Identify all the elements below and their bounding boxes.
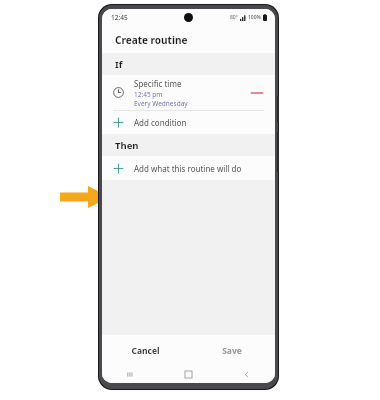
staticText: Add what this routine will do — [134, 163, 242, 174]
staticText: 12:45 — [111, 13, 128, 22]
button[interactable]: Recents — [102, 366, 159, 383]
button[interactable]: Home — [159, 366, 217, 383]
other: Highlight arrow — [60, 186, 110, 208]
staticText: 12:45 pm — [134, 90, 163, 99]
button[interactable]: Cancel — [102, 335, 188, 366]
button[interactable]: Add condition — [102, 111, 275, 134]
staticText: Create routine — [115, 33, 188, 47]
staticText: Specific time — [134, 78, 182, 89]
staticText: Add condition — [134, 117, 187, 128]
staticText: 100% — [248, 14, 261, 21]
staticText: 80° — [230, 14, 238, 21]
staticText: Then — [115, 139, 139, 152]
staticText: Cancel — [131, 345, 160, 357]
staticText: If — [115, 58, 123, 71]
button[interactable]: Remove condition — [250, 86, 264, 100]
button[interactable]: Save — [188, 335, 275, 366]
staticText: Save — [222, 345, 242, 357]
button[interactable]: Add what this routine will do — [102, 156, 275, 180]
staticText: Every Wednesday — [134, 99, 188, 108]
button[interactable]: Specific time — [102, 75, 275, 110]
button[interactable]: Back — [217, 366, 275, 383]
